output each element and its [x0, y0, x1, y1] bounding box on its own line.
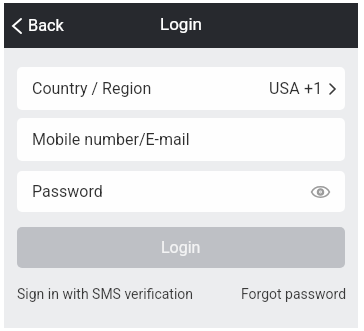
button[interactable]: Password: [17, 171, 345, 212]
staticText: Login: [160, 14, 202, 34]
staticText: Country / Region: [32, 79, 152, 98]
button[interactable]: Login: [17, 227, 345, 268]
staticText: Password: [32, 182, 103, 201]
staticText: Sign in with SMS verification: [17, 286, 194, 302]
button[interactable]: Forgot password: [241, 284, 347, 304]
button[interactable]: Sign in with SMS verification: [17, 284, 194, 304]
staticText: Back: [28, 16, 64, 35]
staticText: USA +1: [269, 79, 323, 98]
button[interactable]: Show password: [308, 180, 336, 204]
staticText: Forgot password: [241, 286, 347, 302]
staticText: Login: [161, 238, 201, 257]
staticText: Mobile number/E-mail: [32, 130, 190, 149]
button[interactable]: Mobile number/E-mail: [17, 118, 345, 161]
button[interactable]: Back: [4, 10, 76, 41]
button[interactable]: Country / Region: [17, 67, 345, 110]
